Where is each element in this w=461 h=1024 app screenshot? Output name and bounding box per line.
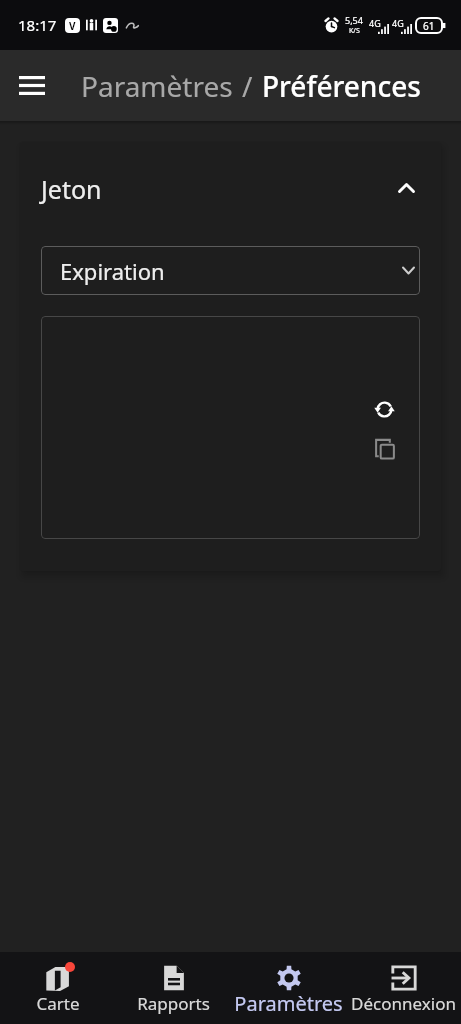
- button[interactable]: Jeton: [20, 142, 441, 246]
- button[interactable]: Refresh: [365, 390, 404, 429]
- staticText: 4G: [392, 17, 404, 29]
- button[interactable]: Carte: [0, 952, 116, 1024]
- staticText: 18:17: [18, 15, 57, 35]
- staticText: Paramètres: [234, 990, 343, 1017]
- staticText: 61: [423, 19, 435, 33]
- staticText: Rapports: [137, 992, 210, 1015]
- staticText: K/S: [349, 26, 360, 36]
- staticText: 5,54: [345, 14, 363, 26]
- staticText: Préférences: [262, 67, 421, 105]
- button[interactable]: Rapports: [116, 952, 231, 1024]
- staticText: Expiration: [60, 256, 165, 286]
- button[interactable]: Menu: [0, 50, 64, 121]
- staticText: /: [242, 67, 253, 105]
- button[interactable]: Copy: [365, 429, 404, 468]
- staticText: Carte: [36, 992, 80, 1015]
- staticText: V: [69, 19, 76, 33]
- staticText: Paramètres: [81, 67, 233, 105]
- staticText: Jeton: [41, 172, 102, 206]
- button[interactable]: Expiration: [41, 246, 420, 295]
- button[interactable]: Paramètres: [231, 952, 346, 1024]
- staticText: 4G: [369, 17, 381, 29]
- staticText: Déconnexion: [351, 992, 456, 1015]
- button[interactable]: Déconnexion: [346, 952, 461, 1024]
